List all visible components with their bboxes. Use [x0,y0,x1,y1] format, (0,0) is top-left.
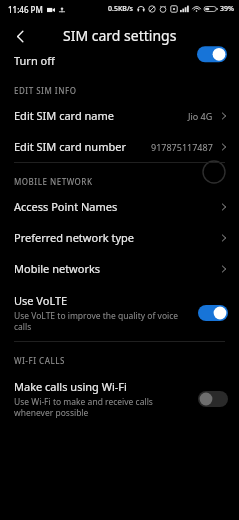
staticText: Use Wi-Fi to make and receive calls when… [14,396,190,418]
staticText: Jio 4G [188,110,213,122]
button[interactable]: Back [6,22,34,50]
staticText: Turn off [14,53,55,65]
staticText: MOBILE NETWORK [14,176,93,187]
staticText: Preferred network type [14,230,134,245]
staticText: Use VoLTE to improve the quality of voic… [14,310,190,332]
staticText: Use VoLTE [14,293,68,308]
button[interactable]: On [198,305,228,321]
staticText: SIM card settings [63,26,177,45]
button[interactable]: Turn off [0,53,239,65]
button[interactable]: Edit SIM card name [0,100,239,131]
staticText: WI-FI CALLS [14,355,65,366]
staticText: 11:46 PM [8,4,43,15]
staticText: Edit SIM card number [14,139,126,154]
button[interactable]: Off [198,391,228,407]
button[interactable]: Preferred network type [0,222,239,253]
staticText: 917875117487 [151,141,213,153]
staticText: 39% [220,4,234,14]
staticText: Mobile networks [14,261,101,276]
staticText: Edit SIM card name [14,108,115,123]
button[interactable]: Mobile networks [0,253,239,284]
button[interactable]: Edit SIM card number [0,131,239,162]
staticText: 0.5KB/s [108,4,134,14]
staticText: EDIT SIM INFO [14,85,77,96]
button[interactable]: Make calls using Wi-Fi [0,370,239,427]
button[interactable]: Use VoLTE [0,284,239,341]
staticText: Access Point Names [14,199,118,214]
staticText: Make calls using Wi-Fi [14,379,127,394]
button[interactable]: Access Point Names [0,191,239,222]
